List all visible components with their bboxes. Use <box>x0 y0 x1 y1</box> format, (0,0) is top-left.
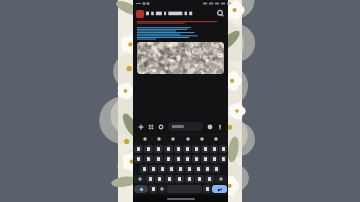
button[interactable]: Emoji <box>205 122 215 132</box>
button[interactable]: A <box>140 165 148 173</box>
button[interactable]: Z <box>146 175 154 183</box>
button[interactable]: G <box>176 165 184 173</box>
button[interactable]: R <box>164 155 173 163</box>
button[interactable]: GIF <box>156 122 166 132</box>
button[interactable]: U <box>192 155 200 163</box>
button[interactable]: Keyboard layouts <box>141 135 149 143</box>
button[interactable]: M <box>205 175 214 183</box>
button[interactable]: C <box>165 175 174 183</box>
button[interactable]: 3 <box>154 145 163 153</box>
button[interactable]: Enter <box>212 185 227 193</box>
button[interactable]: E <box>154 155 163 163</box>
button[interactable]: 1 <box>134 145 143 153</box>
button[interactable]: P <box>219 155 227 163</box>
button[interactable]: Sticker <box>155 135 163 143</box>
button[interactable]: 7 <box>192 145 200 153</box>
button[interactable]: T <box>174 155 182 163</box>
button[interactable]: Backspace <box>215 175 227 183</box>
button[interactable]: S <box>149 165 157 173</box>
button[interactable]: D <box>158 165 166 173</box>
button[interactable]: 0 <box>219 145 227 153</box>
button[interactable]: 9 <box>210 145 218 153</box>
button[interactable]: I <box>201 155 209 163</box>
button[interactable]: Y <box>183 155 191 163</box>
button[interactable]: X <box>155 175 164 183</box>
button[interactable]: . <box>203 185 211 193</box>
button[interactable]: 4 <box>164 145 173 153</box>
button[interactable]: Shift <box>134 175 145 183</box>
button[interactable]: 8 <box>201 145 209 153</box>
button[interactable]: , <box>149 185 157 193</box>
button[interactable]: B <box>185 175 194 183</box>
button[interactable]: Search <box>216 9 225 18</box>
button[interactable]: V <box>175 175 184 183</box>
button[interactable]: Q <box>134 155 143 163</box>
button[interactable]: Settings <box>158 185 166 193</box>
button[interactable]: L <box>212 165 220 173</box>
button[interactable]: O <box>210 155 218 163</box>
button[interactable]: W <box>144 155 153 163</box>
button[interactable]: Group avatar <box>136 7 225 20</box>
button[interactable]: 6 <box>183 145 191 153</box>
button[interactable]: Stickers <box>146 122 156 132</box>
button[interactable]: Add <box>136 122 146 132</box>
button[interactable]: Photo attachment <box>137 42 224 74</box>
button[interactable]: Symbols <box>134 185 148 193</box>
button[interactable]: 5 <box>174 145 182 153</box>
button[interactable]: Group avatar <box>136 10 144 18</box>
button[interactable]: Translate <box>212 135 220 143</box>
button[interactable]: F <box>167 165 175 173</box>
button[interactable]: N <box>195 175 204 183</box>
button[interactable]: J <box>194 165 202 173</box>
button[interactable]: H <box>185 165 193 173</box>
button[interactable]: Settings <box>184 135 192 143</box>
button[interactable]: 2 <box>144 145 153 153</box>
button[interactable]: GIF <box>169 135 177 143</box>
button[interactable]: Clipboard <box>198 135 206 143</box>
button[interactable]: Voice message <box>215 122 225 132</box>
button[interactable] <box>168 122 203 131</box>
button[interactable]: K <box>203 165 211 173</box>
